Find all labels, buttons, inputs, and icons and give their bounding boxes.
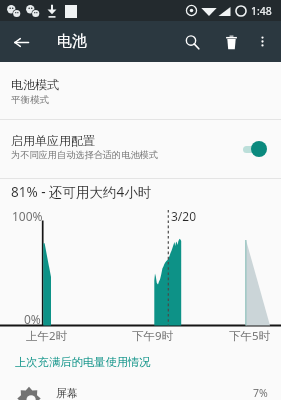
staticText: 启用单应用配置 — [11, 133, 95, 148]
button[interactable]: More options — [248, 27, 277, 56]
staticText: 0% — [24, 311, 41, 327]
staticText: 81% - 还可用大约4小时 — [11, 183, 152, 201]
staticText: 7% — [253, 386, 268, 400]
staticText: 下午9时 — [132, 328, 174, 344]
button[interactable]: 上次充满后的电量使用情况 — [0, 347, 281, 377]
staticText: 平衡模式 — [11, 94, 49, 106]
button[interactable]: Search — [176, 26, 208, 58]
staticText: 为不同应用自动选择合适的电池模式 — [11, 149, 158, 161]
button[interactable]: Enable per-app profiles — [238, 136, 276, 162]
button[interactable]: Delete — [215, 26, 247, 58]
staticText: 电池 — [57, 32, 87, 51]
staticText: 100% — [12, 208, 43, 224]
button[interactable]: 电池模式 — [0, 62, 281, 119]
staticText: 电池模式 — [11, 77, 59, 92]
button[interactable]: 屏幕 — [0, 377, 281, 400]
staticText: 下午5时 — [229, 328, 271, 344]
staticText: 3/20 — [171, 208, 197, 224]
staticText: 1:48 — [251, 4, 272, 18]
staticText: 上午2时 — [26, 328, 68, 344]
button[interactable]: Back — [6, 27, 36, 57]
staticText: 屏幕 — [56, 386, 78, 400]
button[interactable]: 启用单应用配置 — [0, 120, 281, 178]
staticText: 上次充满后的电量使用情况 — [15, 355, 151, 369]
